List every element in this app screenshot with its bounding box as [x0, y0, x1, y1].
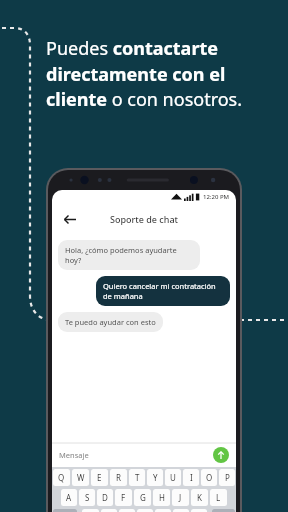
button[interactable]: Back: [58, 208, 80, 230]
button[interactable]: D: [97, 489, 113, 506]
button[interactable]: J: [172, 489, 189, 506]
staticText: Te puedo ayudar con esto: [65, 317, 156, 327]
button[interactable]: N: [173, 509, 189, 512]
button[interactable]: Z: [82, 509, 99, 512]
staticText: S: [85, 492, 90, 503]
button[interactable]: Te puedo ayudar con esto: [58, 312, 163, 332]
staticText: K: [197, 492, 202, 503]
staticText: I: [190, 472, 193, 483]
button[interactable]: U: [165, 469, 181, 486]
button[interactable]: T: [129, 469, 145, 486]
staticText: J: [179, 492, 182, 503]
button[interactable]: Y: [147, 469, 163, 486]
button[interactable]: A: [61, 489, 77, 506]
button[interactable]: S: [79, 489, 95, 506]
staticText: W: [77, 472, 85, 483]
staticText: D: [102, 492, 108, 503]
button[interactable]: P: [219, 469, 235, 486]
button[interactable]: F: [115, 489, 132, 506]
button[interactable]: H: [153, 489, 170, 506]
staticText: U: [170, 472, 176, 483]
staticText: Puedes contactarte directamente con el c…: [46, 36, 278, 111]
staticText: Soporte de chat: [110, 213, 179, 225]
button[interactable]: Shift: [53, 509, 77, 512]
staticText: R: [116, 472, 121, 483]
staticText: Q: [58, 472, 65, 483]
staticText: A: [66, 492, 72, 503]
staticText: T: [135, 472, 140, 483]
staticText: Quiero cancelar mi contratación de mañan…: [103, 281, 223, 301]
button[interactable]: L: [210, 489, 227, 506]
staticText: 12:20 PM: [203, 193, 230, 201]
staticText: Mensaje: [59, 450, 213, 460]
staticText: G: [140, 492, 146, 503]
button[interactable]: X: [101, 509, 117, 512]
button[interactable]: O: [201, 469, 217, 486]
button[interactable]: K: [191, 489, 208, 506]
staticText: Y: [153, 472, 158, 483]
button[interactable]: B: [155, 509, 171, 512]
button[interactable]: V: [137, 509, 153, 512]
button[interactable]: Backspace: [212, 509, 235, 512]
button[interactable]: Q: [53, 469, 70, 486]
staticText: F: [121, 492, 126, 503]
button[interactable]: Send: [213, 447, 229, 463]
button[interactable]: I: [183, 469, 199, 486]
button[interactable]: G: [134, 489, 151, 506]
button[interactable]: M: [191, 509, 207, 512]
staticText: O: [206, 472, 213, 483]
button[interactable]: Hola, ¿cómo podemos ayudarte hoy?: [58, 240, 200, 270]
staticText: H: [159, 492, 165, 503]
button[interactable]: E: [91, 469, 108, 486]
button[interactable]: Quiero cancelar mi contratación de mañan…: [96, 276, 230, 306]
button[interactable]: W: [72, 469, 89, 486]
staticText: E: [97, 472, 102, 483]
staticText: P: [225, 472, 230, 483]
staticText: Hola, ¿cómo podemos ayudarte hoy?: [65, 245, 193, 265]
staticText: L: [216, 492, 221, 503]
button[interactable]: R: [110, 469, 127, 486]
button[interactable]: C: [119, 509, 135, 512]
